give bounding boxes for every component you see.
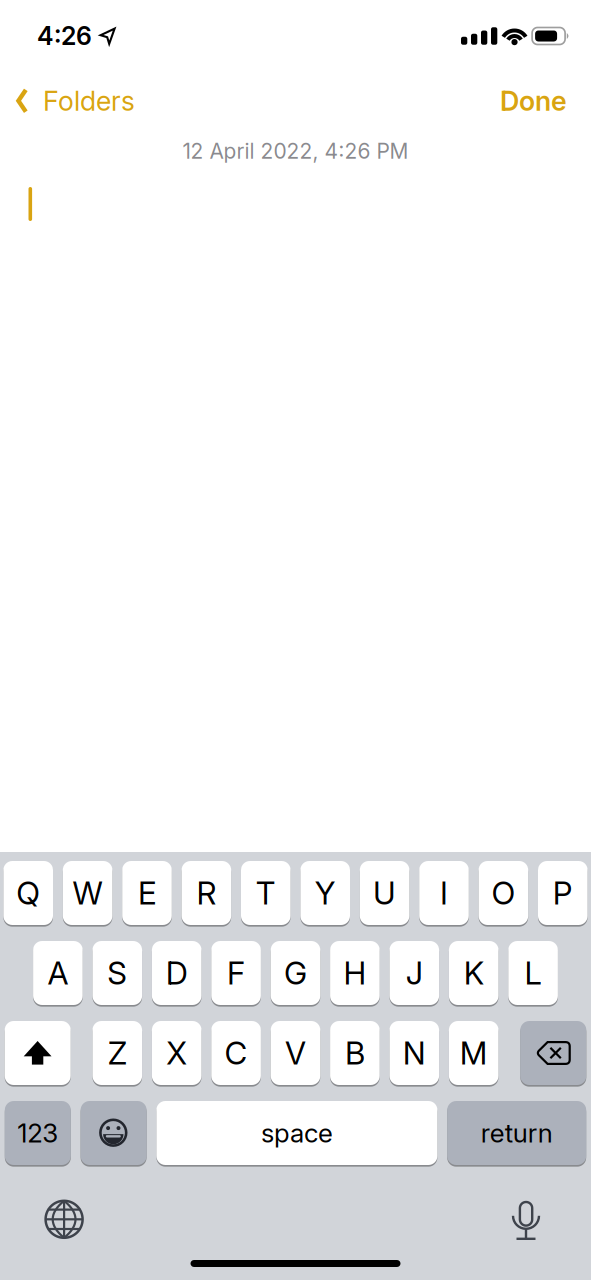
button[interactable]: L xyxy=(508,941,558,1005)
button[interactable]: C xyxy=(211,1021,261,1085)
button[interactable]: N xyxy=(389,1021,439,1085)
staticText: F xyxy=(227,954,245,992)
button[interactable]: S xyxy=(92,941,142,1005)
button[interactable]: H xyxy=(330,941,380,1005)
button[interactable]: W xyxy=(63,861,112,925)
staticText: T xyxy=(256,874,276,912)
staticText: W xyxy=(73,874,103,912)
staticText: N xyxy=(403,1034,426,1072)
staticText: O xyxy=(491,874,515,912)
staticText: S xyxy=(107,954,127,992)
staticText: Q xyxy=(16,874,40,912)
staticText: V xyxy=(285,1034,306,1072)
staticText: H xyxy=(343,954,366,992)
button[interactable]: I xyxy=(419,861,469,925)
button[interactable]: G xyxy=(271,941,320,1005)
button[interactable]: M xyxy=(449,1021,498,1085)
staticText: D xyxy=(166,954,188,992)
button[interactable]: R xyxy=(182,861,231,925)
staticText: Y xyxy=(315,874,336,912)
staticText: X xyxy=(166,1034,187,1072)
staticText: 123 xyxy=(17,1117,58,1149)
staticText: P xyxy=(553,874,573,912)
button[interactable]: J xyxy=(389,941,439,1005)
staticText: Done xyxy=(500,85,567,117)
staticText: Folders xyxy=(43,85,135,117)
staticText: U xyxy=(373,874,396,912)
button[interactable]: Emoji xyxy=(81,1101,147,1165)
button[interactable]: U xyxy=(360,861,409,925)
staticText: L xyxy=(525,954,542,992)
button[interactable]: D xyxy=(152,941,201,1005)
button[interactable]: Dictation xyxy=(504,1193,548,1249)
button[interactable]: A xyxy=(33,941,83,1005)
button[interactable]: E xyxy=(122,861,172,925)
button[interactable] xyxy=(156,1101,437,1165)
staticText: R xyxy=(196,874,216,912)
button[interactable]: Z xyxy=(92,1021,142,1085)
button[interactable]: Shift xyxy=(5,1021,71,1085)
button[interactable]: V xyxy=(271,1021,320,1085)
button[interactable]: Delete xyxy=(520,1021,586,1085)
button[interactable]: B xyxy=(330,1021,380,1085)
staticText: space xyxy=(261,1117,333,1149)
staticText: B xyxy=(345,1034,365,1072)
staticText: M xyxy=(460,1034,488,1072)
staticText: Z xyxy=(108,1034,127,1072)
staticText: A xyxy=(47,954,68,992)
button[interactable]: Numbers xyxy=(5,1101,71,1165)
staticText: G xyxy=(284,954,307,992)
staticText: J xyxy=(406,954,423,992)
button[interactable]: O xyxy=(479,861,528,925)
button[interactable]: T xyxy=(241,861,291,925)
button[interactable]: Q xyxy=(3,861,53,925)
button[interactable]: Return xyxy=(447,1101,586,1165)
button[interactable]: F xyxy=(211,941,261,1005)
button[interactable]: Y xyxy=(300,861,350,925)
button[interactable]: Next keyboard xyxy=(36,1191,92,1247)
button[interactable]: P xyxy=(538,861,588,925)
staticText: 12 April 2022, 4:26 PM xyxy=(182,138,408,164)
staticText: 4:26 xyxy=(37,21,92,51)
button[interactable]: X xyxy=(152,1021,201,1085)
staticText: C xyxy=(225,1034,248,1072)
button[interactable]: Done xyxy=(486,79,581,123)
staticText: K xyxy=(464,954,484,992)
staticText: return xyxy=(481,1117,553,1149)
button[interactable]: K xyxy=(449,941,498,1005)
staticText: I xyxy=(440,874,448,912)
staticText: E xyxy=(138,874,156,912)
button[interactable]: Back to Folders xyxy=(0,79,135,123)
